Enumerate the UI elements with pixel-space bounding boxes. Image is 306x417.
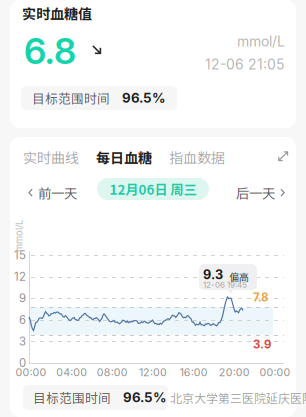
staticText: 9.3 [203, 267, 223, 282]
button[interactable]: 目标范围时间 [23, 385, 168, 410]
staticText: mmol/L [3, 230, 35, 242]
button[interactable]: Fullscreen [278, 151, 288, 161]
staticText: 目标范围时间 [33, 388, 111, 407]
staticText: 后一天 [236, 183, 275, 202]
staticText: 实时血糖值 [22, 3, 92, 23]
staticText: 12-06 21:05 [205, 56, 285, 73]
staticText: 3.9 [253, 337, 271, 351]
staticText: 12 [14, 270, 26, 283]
button[interactable]: 目标范围时间 [21, 86, 177, 110]
staticText: 20:00 [219, 366, 250, 379]
staticText: 12:00 [139, 366, 167, 379]
button[interactable]: 实时曲线 [23, 147, 79, 167]
staticText: 每日血糖 [96, 147, 152, 167]
staticText: 目标范围时间 [32, 89, 110, 107]
button[interactable]: 后一天 [236, 183, 285, 202]
staticText: 6.8 [24, 29, 76, 73]
staticText: 0 [19, 356, 26, 370]
staticText: 9 [19, 291, 26, 305]
staticText: 08:00 [97, 366, 128, 379]
staticText: 指血数据 [169, 147, 225, 167]
staticText: 北京大学第三医院延庆医院 [170, 389, 306, 406]
staticText: 00:00 [259, 366, 290, 379]
staticText: 16:00 [180, 366, 208, 379]
staticText: 7.8 [253, 290, 268, 304]
button[interactable]: 指血数据 [169, 147, 225, 167]
button[interactable]: 12月06日 周三 [97, 178, 209, 200]
staticText: 3 [19, 334, 26, 348]
staticText: 实时曲线 [23, 147, 79, 167]
staticText: 12-06 19:45 [203, 280, 247, 290]
staticText: 00:00 [15, 366, 46, 379]
staticText: 6 [19, 313, 26, 327]
staticText: mmol/L [237, 33, 285, 50]
staticText: 前一天 [38, 183, 77, 202]
button[interactable]: 每日血糖 [96, 147, 152, 167]
staticText: 96.5% [123, 389, 167, 405]
staticText: 偏高 [229, 269, 249, 284]
staticText: 15 [14, 248, 26, 262]
staticText: 04:00 [56, 366, 87, 379]
staticText: 12月06日 周三 [109, 179, 196, 199]
staticText: 96.5% [122, 90, 166, 106]
button[interactable]: 前一天 [28, 183, 77, 202]
